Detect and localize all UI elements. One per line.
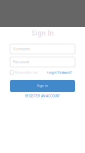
staticText: Sign in xyxy=(37,84,48,88)
button[interactable]: Remember me xyxy=(10,70,38,74)
staticText: Username xyxy=(13,47,30,51)
staticText: Remember me xyxy=(15,70,38,74)
staticText: Sign In xyxy=(31,29,53,37)
button[interactable]: Forgot Password? xyxy=(46,70,75,75)
button[interactable]: REGISTER AN ACCOUNT xyxy=(25,94,60,98)
staticText: Password xyxy=(13,60,29,64)
button[interactable]: Sign in xyxy=(10,80,75,92)
staticText: REGISTER AN ACCOUNT xyxy=(25,94,60,98)
staticText: Forgot Password? xyxy=(46,70,71,75)
